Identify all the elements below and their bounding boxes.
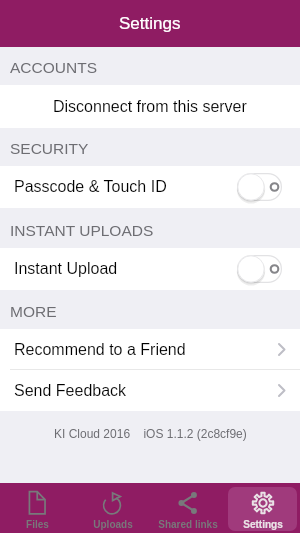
button[interactable]: Uploads xyxy=(78,487,147,531)
staticText: KI Cloud 2016 iOS 1.1.2 (2c8cf9e) xyxy=(54,427,247,440)
staticText: ACCOUNTS xyxy=(10,59,97,76)
staticText: Recommend to a Friend xyxy=(14,341,186,359)
button[interactable]: Instant Upload xyxy=(0,248,300,290)
staticText: Passcode & Touch ID xyxy=(14,178,167,196)
button[interactable]: Settings xyxy=(228,487,297,531)
staticText: Uploads xyxy=(93,519,133,530)
button[interactable]: Files xyxy=(3,487,72,531)
button[interactable]: Recommend to a Friend xyxy=(0,329,300,370)
button[interactable]: Send Feedback xyxy=(0,370,300,411)
staticText: Files xyxy=(26,519,49,530)
button[interactable]: Shared links xyxy=(153,487,222,531)
button[interactable]: Toggle xyxy=(237,255,282,283)
staticText: Instant Upload xyxy=(14,260,118,278)
button[interactable]: Passcode & Touch ID xyxy=(0,166,300,208)
staticText: Settings xyxy=(243,519,283,530)
button[interactable]: Toggle xyxy=(237,173,282,201)
staticText: INSTANT UPLOADS xyxy=(10,222,154,239)
staticText: MORE xyxy=(10,303,57,320)
staticText: SECURITY xyxy=(10,140,89,157)
staticText: Send Feedback xyxy=(14,382,127,400)
staticText: Disconnect from this server xyxy=(53,98,247,116)
button[interactable]: Disconnect from this server xyxy=(0,85,300,128)
staticText: Settings xyxy=(119,14,181,33)
staticText: Shared links xyxy=(158,519,218,530)
